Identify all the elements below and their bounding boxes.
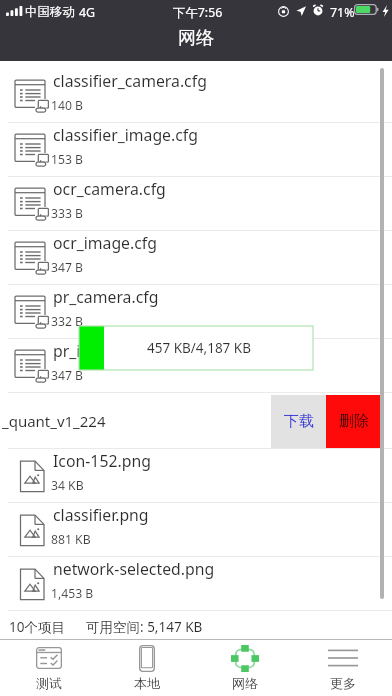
- staticText: 333 B: [51, 205, 84, 222]
- staticText: 332 B: [51, 313, 84, 330]
- staticText: 可用空间: 5,147 KB: [86, 618, 203, 636]
- button[interactable]: Icon-152.png: [0, 449, 392, 503]
- button[interactable]: ocr_image.cfg: [0, 231, 392, 285]
- button[interactable]: classifier.png: [0, 503, 392, 557]
- staticText: pr_camera.cfg: [53, 286, 159, 308]
- staticText: pr_image.cfg: [53, 340, 150, 362]
- staticText: 4G: [79, 4, 96, 21]
- button[interactable]: 更多: [294, 640, 392, 696]
- button[interactable]: 下载: [271, 395, 326, 448]
- button[interactable]: ocr_camera.cfg: [0, 177, 392, 231]
- staticText: 本地: [134, 675, 160, 691]
- staticText: 140 B: [51, 97, 84, 114]
- staticText: ocr_camera.cfg: [53, 178, 166, 200]
- staticText: Icon-152.png: [53, 450, 151, 472]
- staticText: 下午7:56: [173, 4, 223, 21]
- staticText: 347 B: [51, 367, 84, 384]
- button[interactable]: pr_camera.cfg: [0, 285, 392, 339]
- button[interactable]: 测试: [0, 640, 98, 696]
- staticText: classifier_camera.cfg: [53, 70, 207, 92]
- button[interactable]: 本地: [98, 640, 196, 696]
- staticText: 删除: [339, 412, 369, 431]
- staticText: 881 KB: [51, 531, 91, 548]
- staticText: network-selected.png: [53, 558, 215, 580]
- button[interactable]: pr_image.cfg: [0, 339, 392, 393]
- button[interactable]: network-selected.png: [0, 557, 392, 611]
- button[interactable]: _quant_v1_224: [2, 411, 106, 431]
- staticText: 34 KB: [51, 477, 84, 494]
- button[interactable]: 网络: [196, 640, 294, 696]
- staticText: 中国移动: [25, 4, 75, 20]
- staticText: 347 B: [51, 259, 84, 276]
- staticText: classifier.png: [53, 504, 149, 526]
- button[interactable]: 删除: [326, 395, 381, 448]
- staticText: 71%: [330, 4, 355, 21]
- staticText: 1,453 B: [51, 585, 94, 602]
- staticText: 153 B: [51, 151, 84, 168]
- staticText: 10个项目: [9, 618, 65, 636]
- staticText: classifier_image.cfg: [53, 124, 198, 146]
- staticText: 测试: [36, 675, 62, 691]
- staticText: 网络: [178, 27, 214, 50]
- staticText: ocr_image.cfg: [53, 232, 157, 254]
- staticText: 457 KB/4,187 KB: [147, 339, 251, 357]
- button[interactable]: classifier_image.cfg: [0, 123, 392, 177]
- staticText: 下载: [284, 412, 314, 431]
- staticText: 更多: [330, 675, 356, 691]
- button[interactable]: classifier_camera.cfg: [0, 69, 392, 123]
- staticText: 网络: [232, 675, 258, 691]
